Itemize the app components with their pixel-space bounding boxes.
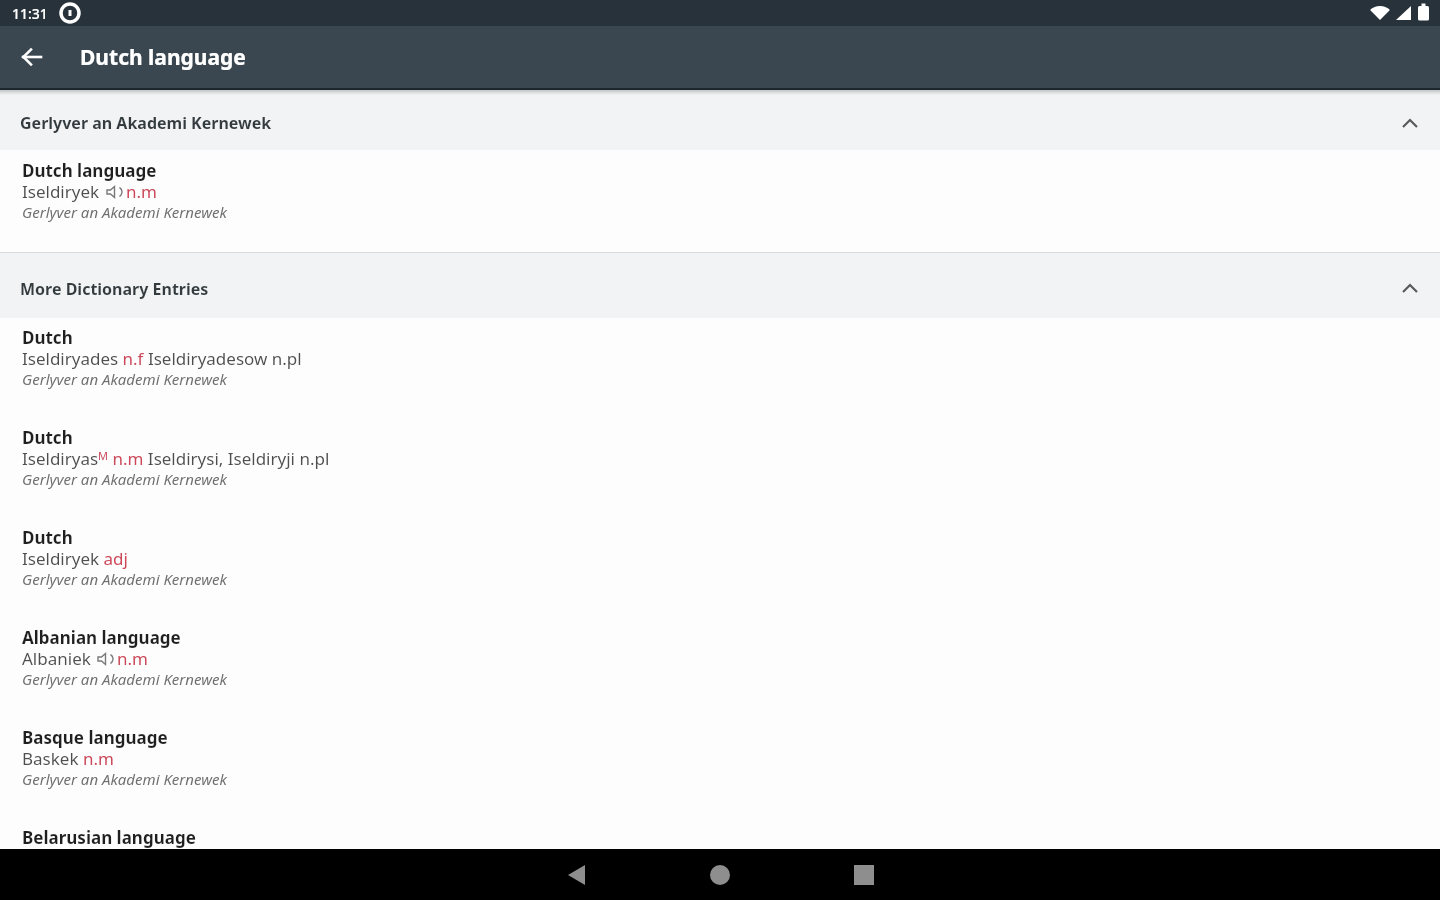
staticText: Albaniek	[22, 647, 91, 670]
staticText: Gerlyver an Akademi Kernewek	[22, 369, 227, 389]
button[interactable]: Dutch	[0, 326, 1440, 426]
staticText: IseldiryasM n.m Iseldirysi, Iseldiryji n…	[22, 447, 330, 470]
staticText: Albanian language	[22, 626, 181, 649]
staticText: Dutch	[22, 526, 73, 549]
button[interactable]: Dutch	[0, 526, 1440, 626]
staticText: Dutch language	[22, 159, 157, 182]
button[interactable]: Dutch	[0, 426, 1440, 526]
button[interactable]	[16, 41, 48, 73]
button[interactable]	[552, 851, 600, 899]
staticText: Gerlyver an Akademi Kernewek	[22, 569, 227, 589]
button[interactable]: Dutch language	[22, 159, 227, 222]
staticText: Basque language	[22, 726, 168, 749]
staticText: n.m	[117, 647, 148, 670]
staticText: Iseldiryek	[22, 180, 100, 203]
staticText: Iseldiryek adj	[22, 547, 128, 570]
button[interactable]: Belarusian language	[22, 826, 1440, 849]
staticText: Gerlyver an Akademi Kernewek	[22, 769, 227, 789]
staticText: Gerlyver an Akademi Kernewek	[22, 469, 227, 489]
button[interactable]: Basque language	[0, 726, 1440, 826]
staticText: Dutch	[22, 326, 73, 349]
staticText: n.m	[126, 180, 157, 203]
button[interactable]: Albanian language	[0, 626, 1440, 726]
staticText: Dutch language	[80, 43, 246, 72]
staticText: Belarusian language	[22, 826, 196, 849]
button[interactable]: More Dictionary Entries	[0, 253, 1440, 318]
staticText: Gerlyver an Akademi Kernewek	[22, 669, 227, 689]
button[interactable]	[696, 851, 744, 899]
staticText: 11:31	[12, 4, 48, 23]
staticText: Baskek n.m	[22, 747, 114, 770]
staticText: Gerlyver an Akademi Kernewek	[22, 202, 227, 222]
button[interactable]: Gerlyver an Akademi Kernewek	[0, 90, 1440, 150]
staticText: Dutch	[22, 426, 73, 449]
staticText: More Dictionary Entries	[20, 278, 209, 300]
button[interactable]	[840, 851, 888, 899]
staticText: Gerlyver an Akademi Kernewek	[20, 112, 272, 134]
staticText: Iseldiryades n.f Iseldiryadesow n.pl	[22, 347, 302, 370]
